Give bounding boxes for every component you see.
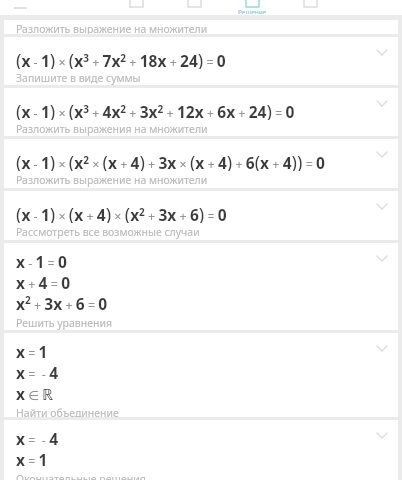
button[interactable]: x - 1 = 0	[4, 243, 398, 330]
staticText: Окончательные решения	[16, 472, 146, 480]
button[interactable]: Expand step	[369, 39, 395, 65]
staticText: x = - 4	[16, 362, 59, 383]
button[interactable]: Camera	[174, 0, 214, 7]
staticText: x2 + 3x + 6 = 0	[16, 293, 108, 314]
button[interactable]: (x - 1) × (x3 + 7x2 + 18x + 24) = 0	[4, 37, 398, 85]
button[interactable]: Expand step	[369, 141, 395, 167]
button[interactable]: (x - 1) × (x + 4) × (x2 + 3x + 6) = 0	[4, 191, 398, 240]
button[interactable]: Expand step	[369, 245, 395, 271]
button[interactable]: Textbook	[290, 0, 330, 7]
staticText: (x - 1) × (x2 × (x + 4) + 3x × (x + 4) +…	[16, 150, 325, 171]
button[interactable]: x = 1	[4, 333, 398, 417]
staticText: x = - 4	[16, 428, 59, 449]
button[interactable]: Menu	[8, 1, 32, 15]
staticText: x - 1 = 0	[16, 251, 67, 272]
staticText: (x - 1) × (x3 + 7x2 + 18x + 24) = 0	[16, 48, 226, 69]
staticText: Разложить выражение на множители	[16, 22, 208, 34]
staticText: Решить уравнения	[16, 316, 113, 330]
button[interactable]: Expand step	[369, 90, 395, 116]
staticText: Запишите в виде суммы	[16, 71, 141, 85]
button[interactable]: Keyboard	[116, 0, 156, 7]
button[interactable]: (x - 1) × (x3 + 4x2 + 3x2 + 12x + 6x + 2…	[4, 88, 398, 136]
staticText: x + 4 = 0	[16, 272, 70, 293]
button[interactable]: Разложить выражение на множители	[4, 20, 398, 34]
staticText: Рассмотреть все возможные случаи	[16, 225, 200, 239]
staticText: Решение	[238, 8, 267, 14]
staticText: Найти объединение	[16, 406, 119, 417]
staticText: Разложить выражения на множители	[16, 122, 208, 136]
button[interactable]: (x - 1) × (x2 × (x + 4) + 3x × (x + 4) +…	[4, 139, 398, 188]
staticText: (x - 1) × (x + 4) × (x2 + 3x + 6) = 0	[16, 202, 227, 223]
staticText: x = 1	[16, 449, 48, 470]
button[interactable]: x = - 4	[4, 420, 398, 480]
button[interactable]: Solution	[232, 0, 272, 14]
staticText: x ∈ ℝ	[16, 383, 54, 404]
button[interactable]: Expand step	[369, 193, 395, 219]
button[interactable]: Expand step	[369, 422, 395, 448]
staticText: x = 1	[16, 341, 48, 362]
staticText: Разложить выражение на множители	[16, 173, 208, 187]
button[interactable]: Expand step	[369, 335, 395, 361]
staticText: (x - 1) × (x3 + 4x2 + 3x2 + 12x + 6x + 2…	[16, 99, 295, 120]
